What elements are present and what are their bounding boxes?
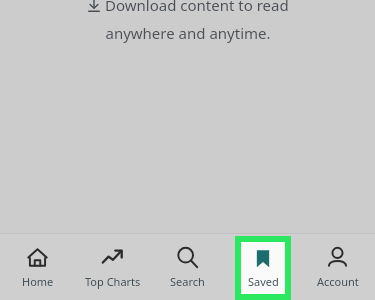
staticText: Saved — [248, 274, 279, 289]
other: Saved — [252, 248, 274, 270]
button[interactable]: Top Charts — [75, 234, 150, 300]
button[interactable]: Saved — [235, 236, 291, 300]
staticText: anywhere and anytime. — [105, 23, 271, 43]
button[interactable]: Account — [300, 234, 375, 300]
other: Search — [176, 246, 199, 269]
staticText: Top Charts — [85, 274, 141, 289]
staticText: Search — [170, 274, 205, 289]
staticText: Account — [317, 274, 359, 289]
button[interactable]: Home — [0, 234, 75, 300]
other: Account — [326, 246, 349, 269]
staticText: Download content to read — [105, 0, 289, 15]
button[interactable]: Search — [150, 234, 225, 300]
staticText: Home — [22, 274, 54, 289]
other: Top Charts — [101, 246, 124, 269]
other: Home — [26, 246, 49, 269]
